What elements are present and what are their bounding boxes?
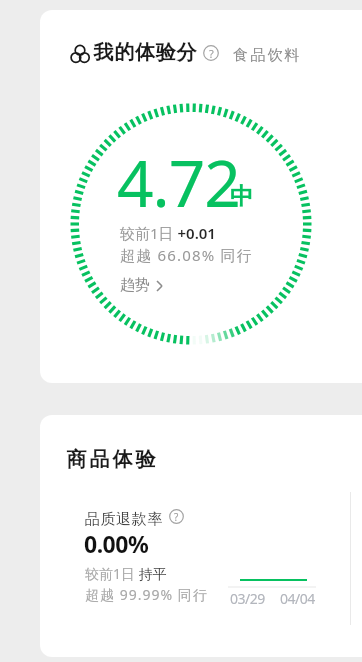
staticText: 较前1日 +0.01 <box>120 223 216 243</box>
staticText: 0.00% <box>84 528 149 559</box>
staticText: 食品饮料 <box>233 46 302 65</box>
staticText: 超越 66.08% 同行 <box>120 245 254 265</box>
staticText: 趋势 <box>120 276 150 295</box>
staticText: ? <box>209 46 214 61</box>
staticText: ? <box>174 510 179 524</box>
staticText: 中 <box>230 182 253 211</box>
staticText: 4.72 <box>117 139 240 226</box>
staticText: 商品体验 <box>65 447 157 472</box>
staticText: 品质退款率 <box>84 510 163 529</box>
staticText: 较前1日 持平 <box>85 564 167 583</box>
staticText: 03/29 <box>230 589 265 608</box>
staticText: 04/04 <box>280 589 315 608</box>
staticText: 我的体验分 <box>93 40 197 65</box>
staticText: 超越 99.99% 同行 <box>85 585 208 604</box>
